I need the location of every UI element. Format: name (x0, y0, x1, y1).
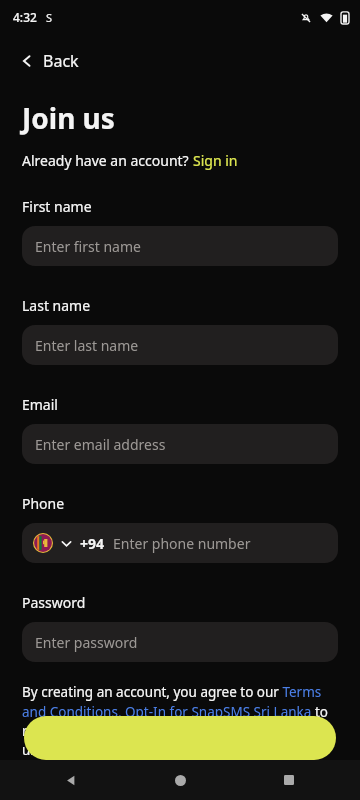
staticText: First name (22, 197, 92, 216)
staticText: Last name (22, 296, 91, 315)
staticText: Enter first name (35, 237, 141, 256)
button[interactable]: Recents (274, 765, 304, 795)
other: Select country code (60, 537, 73, 550)
staticText: Password (22, 593, 86, 612)
staticText: Back (43, 50, 79, 72)
staticText: Enter password (35, 633, 138, 652)
button[interactable]: Enter first name (22, 226, 338, 266)
staticText: Enter email address (35, 435, 166, 454)
button[interactable]: Select country code (22, 523, 338, 563)
staticText: +94 (80, 534, 105, 553)
staticText: Email (22, 395, 58, 414)
button[interactable]: Home (165, 765, 195, 795)
button[interactable]: Enter last name (22, 325, 338, 365)
staticText: By creating an account, you agree to our… (22, 683, 338, 759)
button[interactable]: Create account (24, 716, 336, 760)
button[interactable]: Enter email address (22, 424, 338, 464)
staticText: Already have an account? (22, 151, 193, 170)
button[interactable]: Back (0, 44, 360, 78)
staticText: Join us (22, 99, 115, 137)
button[interactable]: Sign in (193, 151, 238, 170)
staticText: Sign in (193, 151, 238, 170)
button[interactable]: Back (56, 765, 86, 795)
staticText: Enter phone number (113, 534, 251, 553)
staticText: 4:32 (13, 9, 37, 25)
staticText: Phone (22, 494, 65, 513)
staticText: S (46, 10, 53, 25)
button[interactable]: Enter password (22, 622, 338, 662)
other: Back (20, 54, 34, 68)
staticText: Enter last name (35, 336, 139, 355)
